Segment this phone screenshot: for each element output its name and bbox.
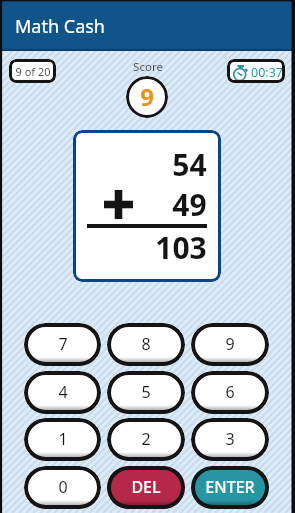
staticText: 103 — [155, 227, 207, 268]
button[interactable]: 7 — [24, 323, 101, 366]
staticText: 1 — [58, 428, 68, 450]
button[interactable]: DEL — [107, 466, 185, 509]
staticText: 9 — [225, 333, 235, 355]
staticText: 9 — [140, 80, 154, 113]
button[interactable]: 6 — [191, 371, 269, 414]
other: Timer — [233, 65, 248, 80]
staticText: 4 — [58, 381, 68, 403]
button[interactable]: 1 — [24, 418, 101, 461]
button[interactable]: Timer — [227, 59, 285, 83]
button[interactable]: 9 of 20 — [9, 59, 56, 83]
button[interactable]: 0 — [24, 466, 101, 509]
button[interactable]: ENTER — [191, 466, 269, 509]
staticText: 5 — [141, 381, 151, 403]
staticText: 7 — [58, 333, 68, 355]
staticText: Score — [133, 59, 163, 75]
staticText: 8 — [141, 333, 151, 355]
staticText: Math Cash — [15, 14, 105, 39]
staticText: DEL — [131, 476, 161, 498]
button[interactable]: 4 — [24, 371, 101, 414]
staticText: 0 — [58, 476, 68, 498]
button[interactable]: 9 — [191, 323, 269, 366]
button[interactable]: 5 — [107, 371, 185, 414]
button[interactable]: 2 — [107, 418, 185, 461]
staticText: 9 of 20 — [15, 64, 51, 79]
staticText: ENTER — [205, 476, 255, 498]
staticText: 00:37 — [251, 64, 283, 81]
staticText: 2 — [141, 428, 151, 450]
staticText: 54 — [172, 144, 207, 185]
button[interactable]: 3 — [191, 418, 269, 461]
staticText: 6 — [225, 381, 235, 403]
staticText: 3 — [225, 428, 235, 450]
button[interactable]: 8 — [107, 323, 185, 366]
staticText: 49 — [172, 184, 207, 225]
